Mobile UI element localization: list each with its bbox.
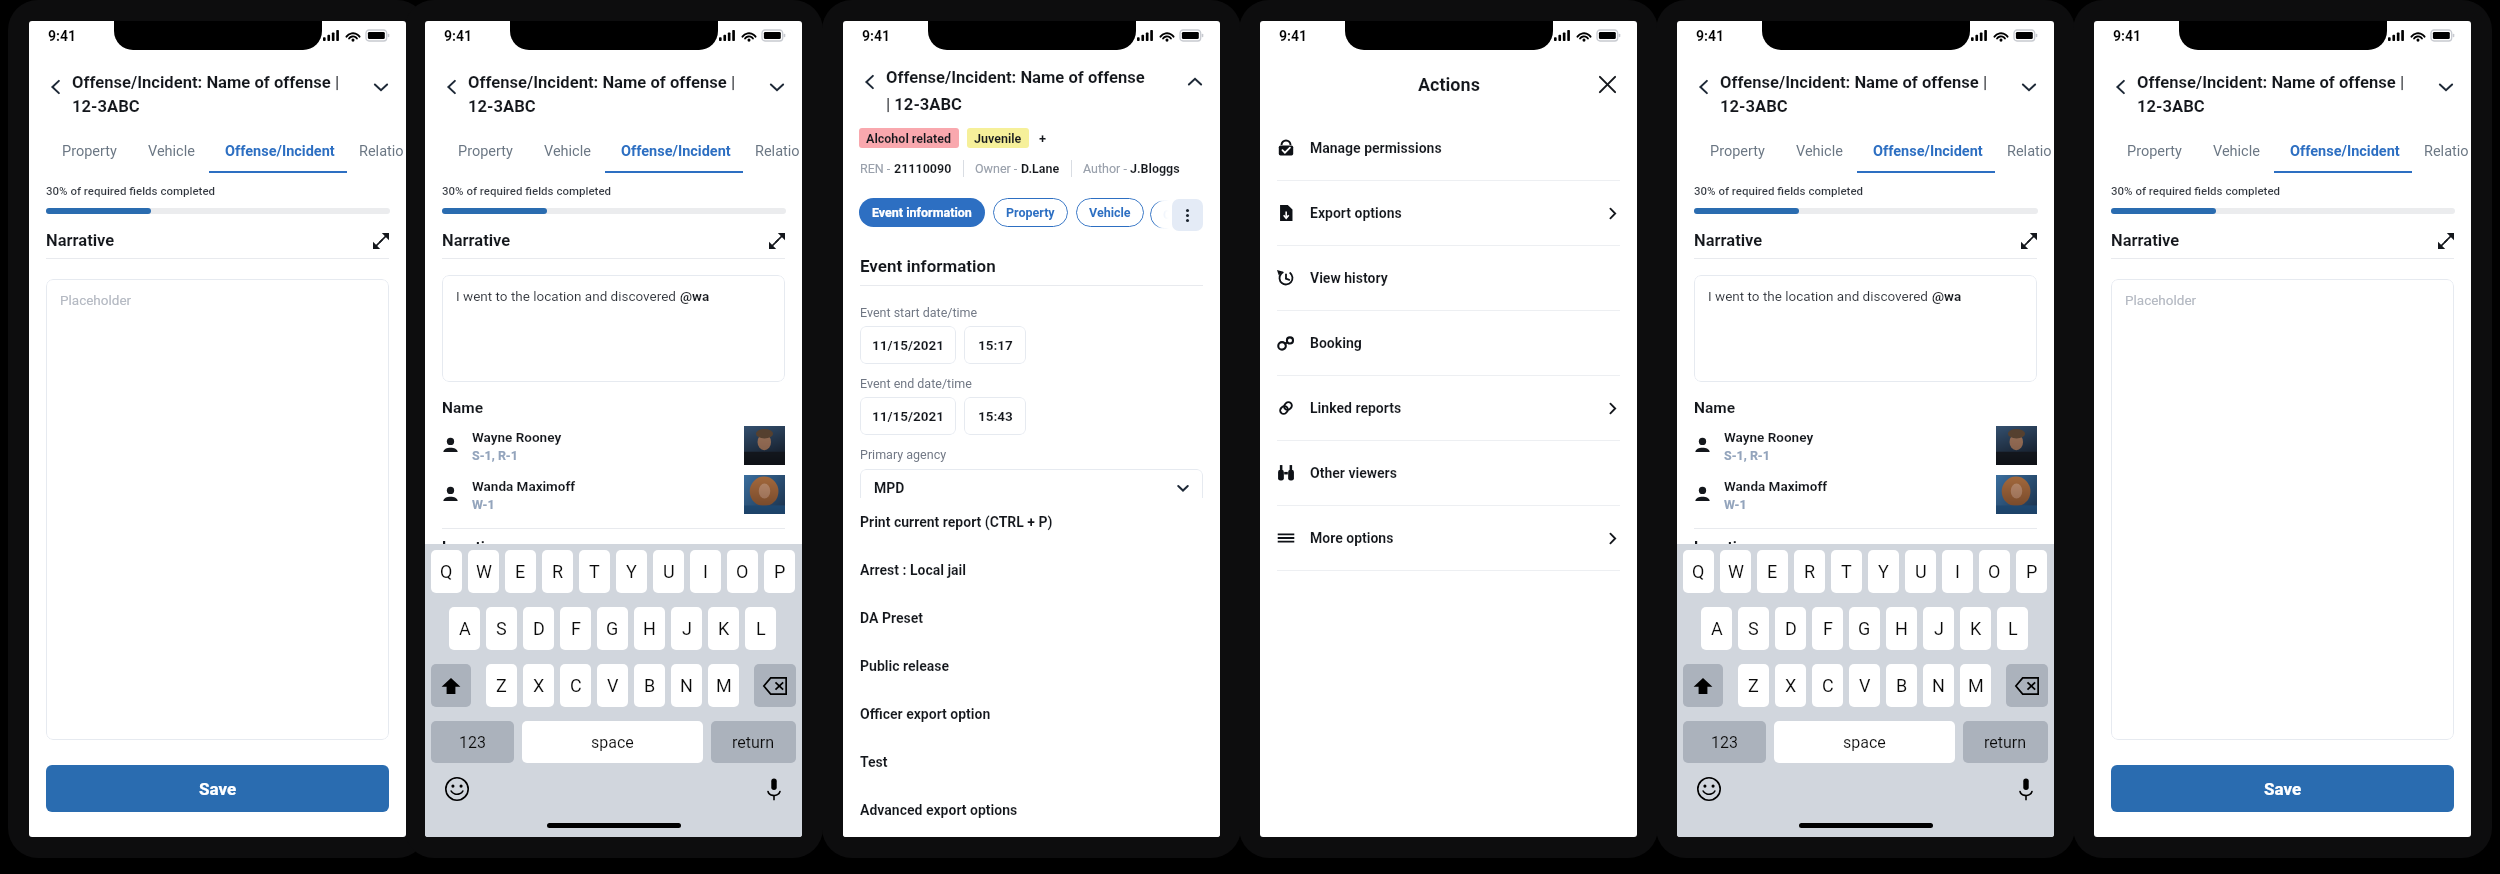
button[interactable]: A <box>449 607 480 650</box>
button[interactable]: Vehicle <box>2197 138 2276 164</box>
button[interactable]: Expand narrative <box>2021 233 2037 249</box>
button[interactable]: K <box>1960 607 1991 650</box>
button[interactable]: 15:17 <box>964 326 1026 364</box>
button[interactable]: Collapse header <box>1186 73 1204 91</box>
button[interactable]: J <box>1923 607 1954 650</box>
button[interactable]: Z <box>1738 664 1769 707</box>
button[interactable]: Backspace <box>2006 664 2048 707</box>
button[interactable]: Wayne Rooney <box>1694 426 2037 465</box>
button[interactable]: F <box>560 607 591 650</box>
button[interactable]: Wanda Maximoff <box>1694 475 2037 514</box>
button[interactable]: P <box>2016 550 2047 593</box>
button[interactable]: V <box>1849 664 1880 707</box>
button[interactable]: C <box>1812 664 1843 707</box>
button[interactable]: Dictation <box>2018 778 2034 801</box>
button[interactable]: Wayne Rooney <box>442 426 785 465</box>
button[interactable]: D <box>523 607 554 650</box>
button[interactable]: Property <box>1694 138 1781 164</box>
button[interactable]: T <box>1831 550 1862 593</box>
button[interactable]: Backspace <box>754 664 796 707</box>
button[interactable]: U <box>1905 550 1936 593</box>
button[interactable]: 123 <box>431 721 514 763</box>
button[interactable]: S <box>486 607 517 650</box>
button[interactable]: Test <box>860 738 1220 786</box>
button[interactable]: J <box>671 607 702 650</box>
button[interactable]: Offense/Incident <box>605 138 747 164</box>
button[interactable]: P <box>764 550 795 593</box>
button[interactable]: Advanced export options <box>860 786 1220 834</box>
button[interactable]: 11/15/2021 <box>860 326 956 364</box>
button[interactable]: 15:43 <box>964 397 1026 435</box>
button[interactable]: I <box>1942 550 1973 593</box>
button[interactable]: space <box>522 721 703 763</box>
button[interactable]: Arrest : Local jail <box>860 546 1220 594</box>
button[interactable]: X <box>1775 664 1806 707</box>
button[interactable]: Shift <box>1683 664 1723 707</box>
button[interactable]: Close <box>1598 75 1617 94</box>
button[interactable]: Linked reports <box>1260 376 1637 441</box>
button[interactable]: R <box>1794 550 1825 593</box>
button[interactable]: Y <box>1868 550 1899 593</box>
button[interactable]: Expand header <box>2437 78 2455 96</box>
button[interactable]: Other viewers <box>1260 441 1637 506</box>
button[interactable]: I <box>690 550 721 593</box>
button[interactable]: Event information <box>859 198 985 227</box>
button[interactable]: X <box>523 664 554 707</box>
button[interactable]: Expand header <box>768 78 786 96</box>
button[interactable]: Expand header <box>2020 78 2038 96</box>
button[interactable]: return <box>711 721 796 763</box>
button[interactable]: Relatio <box>739 138 802 164</box>
button[interactable]: K <box>708 607 739 650</box>
button[interactable]: Expand narrative <box>2438 233 2454 249</box>
button[interactable]: Add tag <box>1039 131 1047 146</box>
button[interactable]: Y <box>616 550 647 593</box>
button[interactable]: R <box>542 550 573 593</box>
button[interactable]: Expand narrative <box>769 233 785 249</box>
button[interactable]: Back <box>2112 78 2130 96</box>
button[interactable]: View history <box>1260 246 1637 311</box>
button[interactable]: Offense/Incident <box>1857 138 1999 164</box>
button[interactable]: V <box>597 664 628 707</box>
button[interactable]: B <box>1886 664 1917 707</box>
button[interactable]: Export options <box>1260 181 1637 246</box>
button[interactable]: Save <box>2111 765 2454 812</box>
button[interactable]: G <box>1849 607 1880 650</box>
button[interactable]: E <box>505 550 536 593</box>
button[interactable]: N <box>671 664 702 707</box>
button[interactable]: Q <box>1683 550 1714 593</box>
button[interactable]: U <box>653 550 684 593</box>
button[interactable]: S <box>1738 607 1769 650</box>
button[interactable]: Alcohol related <box>859 128 959 148</box>
button[interactable]: Emoji <box>1697 777 1721 801</box>
button[interactable]: Save <box>46 765 389 812</box>
button[interactable]: Back <box>47 78 65 96</box>
button[interactable]: O <box>727 550 758 593</box>
button[interactable]: E <box>1757 550 1788 593</box>
button[interactable]: O <box>1979 550 2010 593</box>
button[interactable]: L <box>745 607 776 650</box>
button[interactable]: W <box>1720 550 1751 593</box>
button[interactable]: Offense/Incident <box>2274 138 2416 164</box>
button[interactable]: Property <box>46 138 133 164</box>
button[interactable]: Dictation <box>766 778 782 801</box>
button[interactable]: T <box>579 550 610 593</box>
button[interactable]: Print current report (CTRL + P) <box>860 498 1220 546</box>
button[interactable]: Vehicle <box>1780 138 1859 164</box>
button[interactable]: Offense/Incident <box>209 138 351 164</box>
button[interactable]: Back <box>443 78 461 96</box>
button[interactable]: H <box>1886 607 1917 650</box>
button[interactable]: Booking <box>1260 311 1637 376</box>
button[interactable]: F <box>1812 607 1843 650</box>
button[interactable]: Relatio <box>2408 138 2471 164</box>
button[interactable]: C <box>560 664 591 707</box>
button[interactable]: Property <box>2111 138 2198 164</box>
button[interactable]: B <box>634 664 665 707</box>
button[interactable]: 123 <box>1683 721 1766 763</box>
button[interactable]: space <box>1774 721 1955 763</box>
button[interactable]: Expand header <box>372 78 390 96</box>
button[interactable]: N <box>1923 664 1954 707</box>
button[interactable]: Public release <box>860 642 1220 690</box>
button[interactable]: Vehicle <box>132 138 211 164</box>
button[interactable]: D <box>1775 607 1806 650</box>
button[interactable]: More options <box>1260 506 1637 571</box>
